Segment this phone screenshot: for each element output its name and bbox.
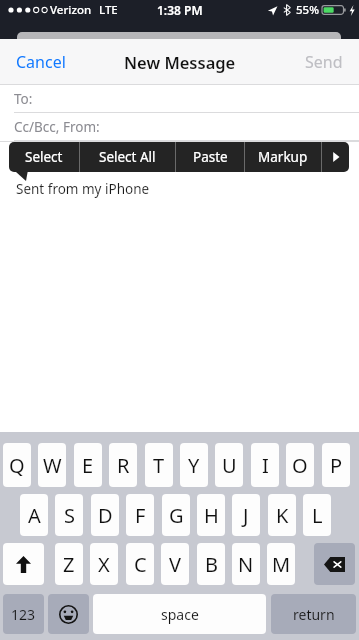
button[interactable]: space <box>93 594 266 634</box>
button[interactable]: Y <box>180 443 208 487</box>
button[interactable]: Delete <box>314 543 355 585</box>
staticText: B <box>205 551 218 578</box>
button[interactable]: F <box>126 494 154 536</box>
button[interactable]: Shift <box>3 543 44 585</box>
staticText: 55% <box>296 2 319 18</box>
staticText: 1:38 PM <box>157 2 203 18</box>
staticText: space <box>161 605 199 624</box>
staticText: Select All <box>99 148 156 166</box>
staticText: P <box>330 452 343 479</box>
staticText: LTE <box>99 2 118 18</box>
staticText: J <box>243 502 249 529</box>
button[interactable]: Q <box>3 443 31 487</box>
staticText: C <box>134 551 147 578</box>
button[interactable]: B <box>197 543 225 585</box>
staticText: Select <box>25 148 63 166</box>
button[interactable]: J <box>232 494 260 536</box>
button[interactable]: D <box>91 494 119 536</box>
staticText: Y <box>188 452 200 479</box>
staticText: A <box>28 502 41 529</box>
staticText: To: <box>14 90 33 108</box>
staticText: Z <box>63 551 75 578</box>
button[interactable]: C <box>126 543 154 585</box>
button[interactable]: Cancel <box>8 43 74 81</box>
button[interactable]: 123 <box>3 594 44 634</box>
button[interactable]: To: <box>0 85 359 113</box>
staticText: H <box>204 502 219 529</box>
button[interactable]: K <box>268 494 296 536</box>
button[interactable]: P <box>322 443 350 487</box>
staticText: Verizon <box>50 2 92 18</box>
button[interactable]: Cc/Bcc, From: <box>0 113 359 141</box>
staticText: X <box>98 551 110 578</box>
staticText: F <box>135 502 146 529</box>
button[interactable]: V <box>161 543 189 585</box>
button[interactable]: Select <box>9 142 79 172</box>
staticText: 123 <box>11 605 36 624</box>
button[interactable]: W <box>38 443 66 487</box>
button[interactable]: Emoji <box>48 594 89 634</box>
button[interactable]: N <box>232 543 260 585</box>
button[interactable]: T <box>145 443 173 487</box>
button[interactable]: X <box>90 543 118 585</box>
staticText: M <box>272 551 291 578</box>
staticText: Sent from my iPhone <box>16 180 150 198</box>
staticText: Send <box>305 51 343 73</box>
staticText: V <box>169 551 181 578</box>
staticText: L <box>312 502 323 529</box>
staticText: Cc/Bcc, From: <box>14 118 100 136</box>
button[interactable]: G <box>162 494 190 536</box>
staticText: T <box>153 452 165 479</box>
button[interactable]: I <box>251 443 279 487</box>
staticText: E <box>82 452 94 479</box>
staticText: U <box>222 452 237 479</box>
button[interactable]: R <box>109 443 137 487</box>
staticText: K <box>276 502 289 529</box>
button[interactable]: L <box>303 494 331 536</box>
button[interactable]: Markup <box>245 142 321 172</box>
button[interactable]: Z <box>55 543 83 585</box>
staticText: W <box>43 452 62 479</box>
staticText: O <box>292 452 308 479</box>
staticText: Q <box>9 452 25 479</box>
button[interactable]: return <box>271 594 356 634</box>
button[interactable]: More <box>322 142 349 172</box>
button[interactable]: O <box>286 443 314 487</box>
staticText: N <box>238 551 254 578</box>
button[interactable]: Select All <box>80 142 175 172</box>
button[interactable]: M <box>267 543 295 585</box>
staticText: New Message <box>124 51 236 73</box>
staticText: I <box>262 452 269 479</box>
staticText: Markup <box>258 148 308 166</box>
button[interactable]: S <box>55 494 83 536</box>
staticText: D <box>98 502 113 529</box>
button[interactable]: Paste <box>176 142 244 172</box>
staticText: Cancel <box>16 51 66 73</box>
button[interactable]: Send <box>297 43 351 81</box>
staticText: return <box>293 605 335 624</box>
button[interactable]: A <box>20 494 48 536</box>
button[interactable]: E <box>74 443 102 487</box>
staticText: Paste <box>193 148 228 166</box>
staticText: R <box>117 452 130 479</box>
button[interactable]: U <box>215 443 243 487</box>
staticText: G <box>169 502 184 529</box>
staticText: S <box>64 502 75 529</box>
button[interactable]: H <box>197 494 225 536</box>
